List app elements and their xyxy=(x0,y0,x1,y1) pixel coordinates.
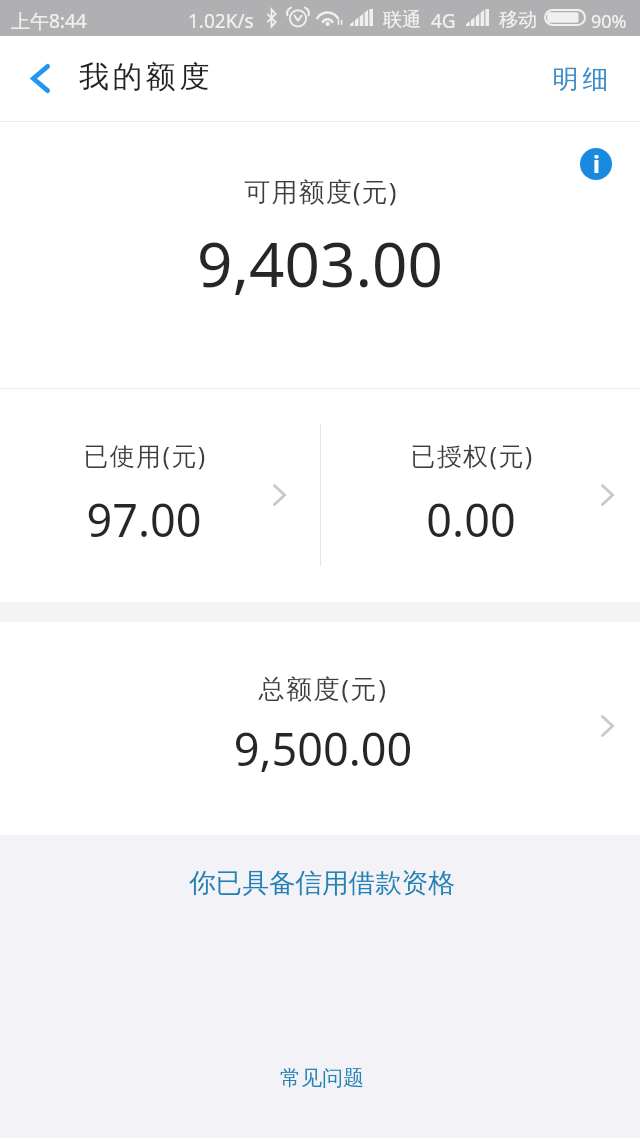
staticText: 4G xyxy=(431,8,456,34)
button[interactable]: 已授权(元) xyxy=(321,389,640,602)
button[interactable]: Back xyxy=(10,36,70,121)
staticText: 1.02K/s xyxy=(188,8,254,34)
button[interactable]: 已使用(元) xyxy=(0,389,320,602)
staticText: i xyxy=(593,148,600,179)
staticText: 我的额度 xyxy=(79,58,213,96)
staticText: 97.00 xyxy=(0,489,288,550)
button[interactable]: Info xyxy=(580,148,612,180)
button[interactable]: 明细 xyxy=(520,36,626,121)
staticText: 联通 xyxy=(383,8,421,32)
staticText: 常见问题 xyxy=(280,1065,364,1091)
staticText: 你已具备信用借款资格 xyxy=(189,866,455,900)
staticText: 可用额度(元) xyxy=(1,173,640,209)
staticText: 移动 xyxy=(499,8,537,32)
staticText: 90% xyxy=(591,9,627,34)
staticText: 9,403.00 xyxy=(0,221,640,305)
staticText: 总额度(元) xyxy=(3,670,640,706)
staticText: 已使用(元) xyxy=(1,438,289,472)
button[interactable]: 你已具备信用借款资格 xyxy=(0,862,640,904)
staticText: 已授权(元) xyxy=(327,438,617,472)
staticText: 0.00 xyxy=(326,489,616,550)
button[interactable]: 常见问题 xyxy=(0,1059,640,1095)
staticText: 9,500.00 xyxy=(3,718,640,779)
button[interactable]: 总额度(元) xyxy=(0,622,640,835)
staticText: 明细 xyxy=(550,63,611,96)
staticText: 上午8:44 xyxy=(11,8,87,34)
